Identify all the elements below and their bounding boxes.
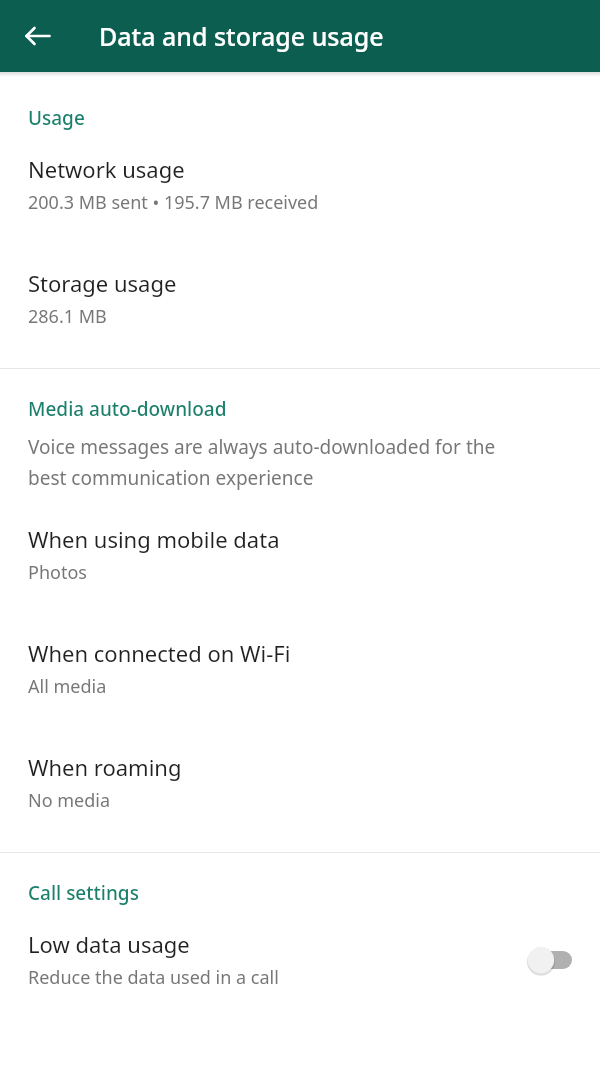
staticText: Low data usage [28,929,190,959]
staticText: Reduce the data used in a call [28,965,279,990]
staticText: Photos [28,560,87,585]
button[interactable]: When using mobile data [0,524,600,585]
staticText: Usage [28,105,85,131]
button[interactable]: Low data usage [0,929,600,990]
staticText: best communication experience [28,465,314,491]
button[interactable]: Storage usage [0,268,600,329]
staticText: Media auto-download [28,396,227,422]
staticText: When roaming [28,752,182,782]
staticText: Data and storage usage [99,19,384,53]
staticText: No media [28,788,111,813]
button[interactable]: Network usage [0,154,600,215]
button[interactable]: When roaming [0,752,600,813]
staticText: When using mobile data [28,524,280,554]
other: Low data usage toggle [524,943,576,977]
staticText: 200.3 MB sent • 195.7 MB received [28,190,319,215]
button[interactable]: Back [14,12,62,60]
staticText: Call settings [28,880,139,906]
staticText: All media [28,674,107,699]
staticText: Storage usage [28,268,177,298]
staticText: 286.1 MB [28,304,107,329]
staticText: When connected on Wi-Fi [28,638,291,668]
staticText: Network usage [28,154,185,184]
button[interactable]: When connected on Wi-Fi [0,638,600,699]
staticText: Voice messages are always auto-downloade… [28,434,496,460]
